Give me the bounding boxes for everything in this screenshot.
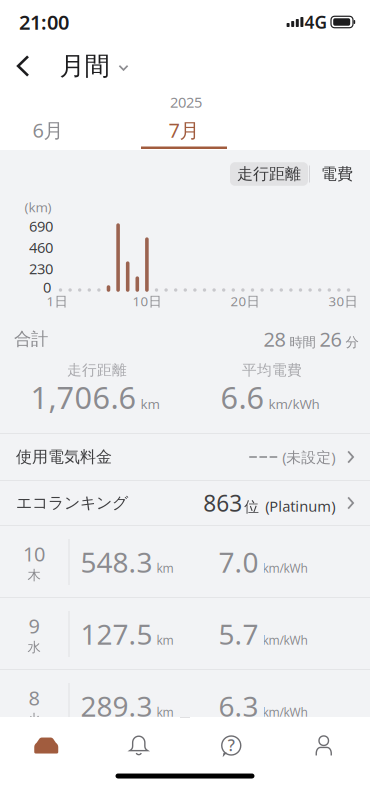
staticText: 690	[29, 216, 53, 236]
staticText: 1,706.6	[30, 377, 136, 417]
staticText: 7月	[168, 117, 199, 143]
staticText: km	[156, 632, 173, 648]
staticText: 26	[319, 326, 341, 352]
staticText: 548.3	[80, 543, 152, 581]
staticText: 2025	[170, 92, 202, 112]
staticText: 20日	[230, 292, 259, 310]
staticText: 走行距離	[67, 361, 127, 379]
staticText: km/kWh	[268, 395, 319, 413]
staticText: 127.5	[80, 615, 152, 653]
staticText: 電費	[321, 164, 353, 184]
button[interactable]: 使用電気料金	[0, 434, 370, 480]
staticText: 5.7	[218, 615, 258, 653]
button[interactable]: Help	[185, 721, 277, 770]
staticText: 水	[27, 639, 40, 655]
staticText: 289.3	[80, 687, 152, 725]
staticText: 位	[244, 498, 259, 516]
staticText: 28	[263, 326, 285, 352]
button[interactable]: Back	[4, 44, 42, 88]
staticText: km/kWh	[262, 704, 307, 720]
staticText: 6月	[32, 117, 63, 143]
staticText: 230	[29, 259, 53, 278]
staticText: 1日	[46, 292, 67, 310]
button[interactable]: 6月	[0, 111, 116, 149]
staticText: ?	[228, 734, 235, 756]
staticText: 21:00	[19, 9, 69, 35]
button[interactable]: 9	[0, 598, 370, 669]
staticText: エコランキング	[16, 493, 128, 513]
staticText: km	[140, 395, 159, 413]
button[interactable]: 8	[0, 670, 370, 741]
staticText: km/kWh	[262, 632, 307, 648]
staticText: 4G	[304, 10, 327, 33]
button[interactable]: 走行距離	[230, 162, 308, 186]
staticText: 時間	[285, 334, 319, 350]
button[interactable]: Notifications	[92, 721, 185, 770]
staticText: km	[156, 560, 173, 576]
button[interactable]: 7月	[115, 111, 252, 149]
staticText: 460	[29, 238, 53, 257]
staticText: 分	[341, 334, 358, 350]
staticText: km/kWh	[262, 560, 307, 576]
staticText: (km)	[24, 198, 51, 216]
staticText: 10	[23, 540, 45, 567]
button[interactable]: Vehicle	[0, 721, 92, 770]
staticText: 10日	[132, 292, 161, 310]
staticText: 30日	[328, 292, 357, 310]
staticText: 0	[43, 277, 51, 297]
staticText: 使用電気料金	[16, 447, 112, 467]
staticText: 6.3	[218, 687, 258, 725]
staticText: 9	[28, 612, 39, 639]
staticText: 863	[203, 488, 242, 518]
staticText: 走行距離	[237, 164, 301, 184]
staticText: 8	[28, 684, 39, 711]
button[interactable]: Account	[277, 721, 370, 770]
staticText: 木	[27, 567, 40, 583]
button[interactable]: エコランキング	[0, 481, 370, 525]
staticText: 平均電費	[242, 361, 302, 379]
button[interactable]: 10	[0, 526, 370, 597]
staticText: 7.0	[218, 543, 258, 581]
staticText: 月間	[59, 50, 109, 81]
staticText: 合計	[14, 328, 48, 350]
staticText: km	[156, 704, 173, 720]
staticText: (Platinum)	[261, 496, 335, 516]
staticText: 6.6	[220, 377, 264, 417]
button[interactable]: 月間	[59, 44, 128, 88]
button[interactable]: 電費	[315, 162, 359, 186]
staticText: 火	[27, 711, 40, 727]
staticText: (未設定)	[282, 447, 335, 467]
